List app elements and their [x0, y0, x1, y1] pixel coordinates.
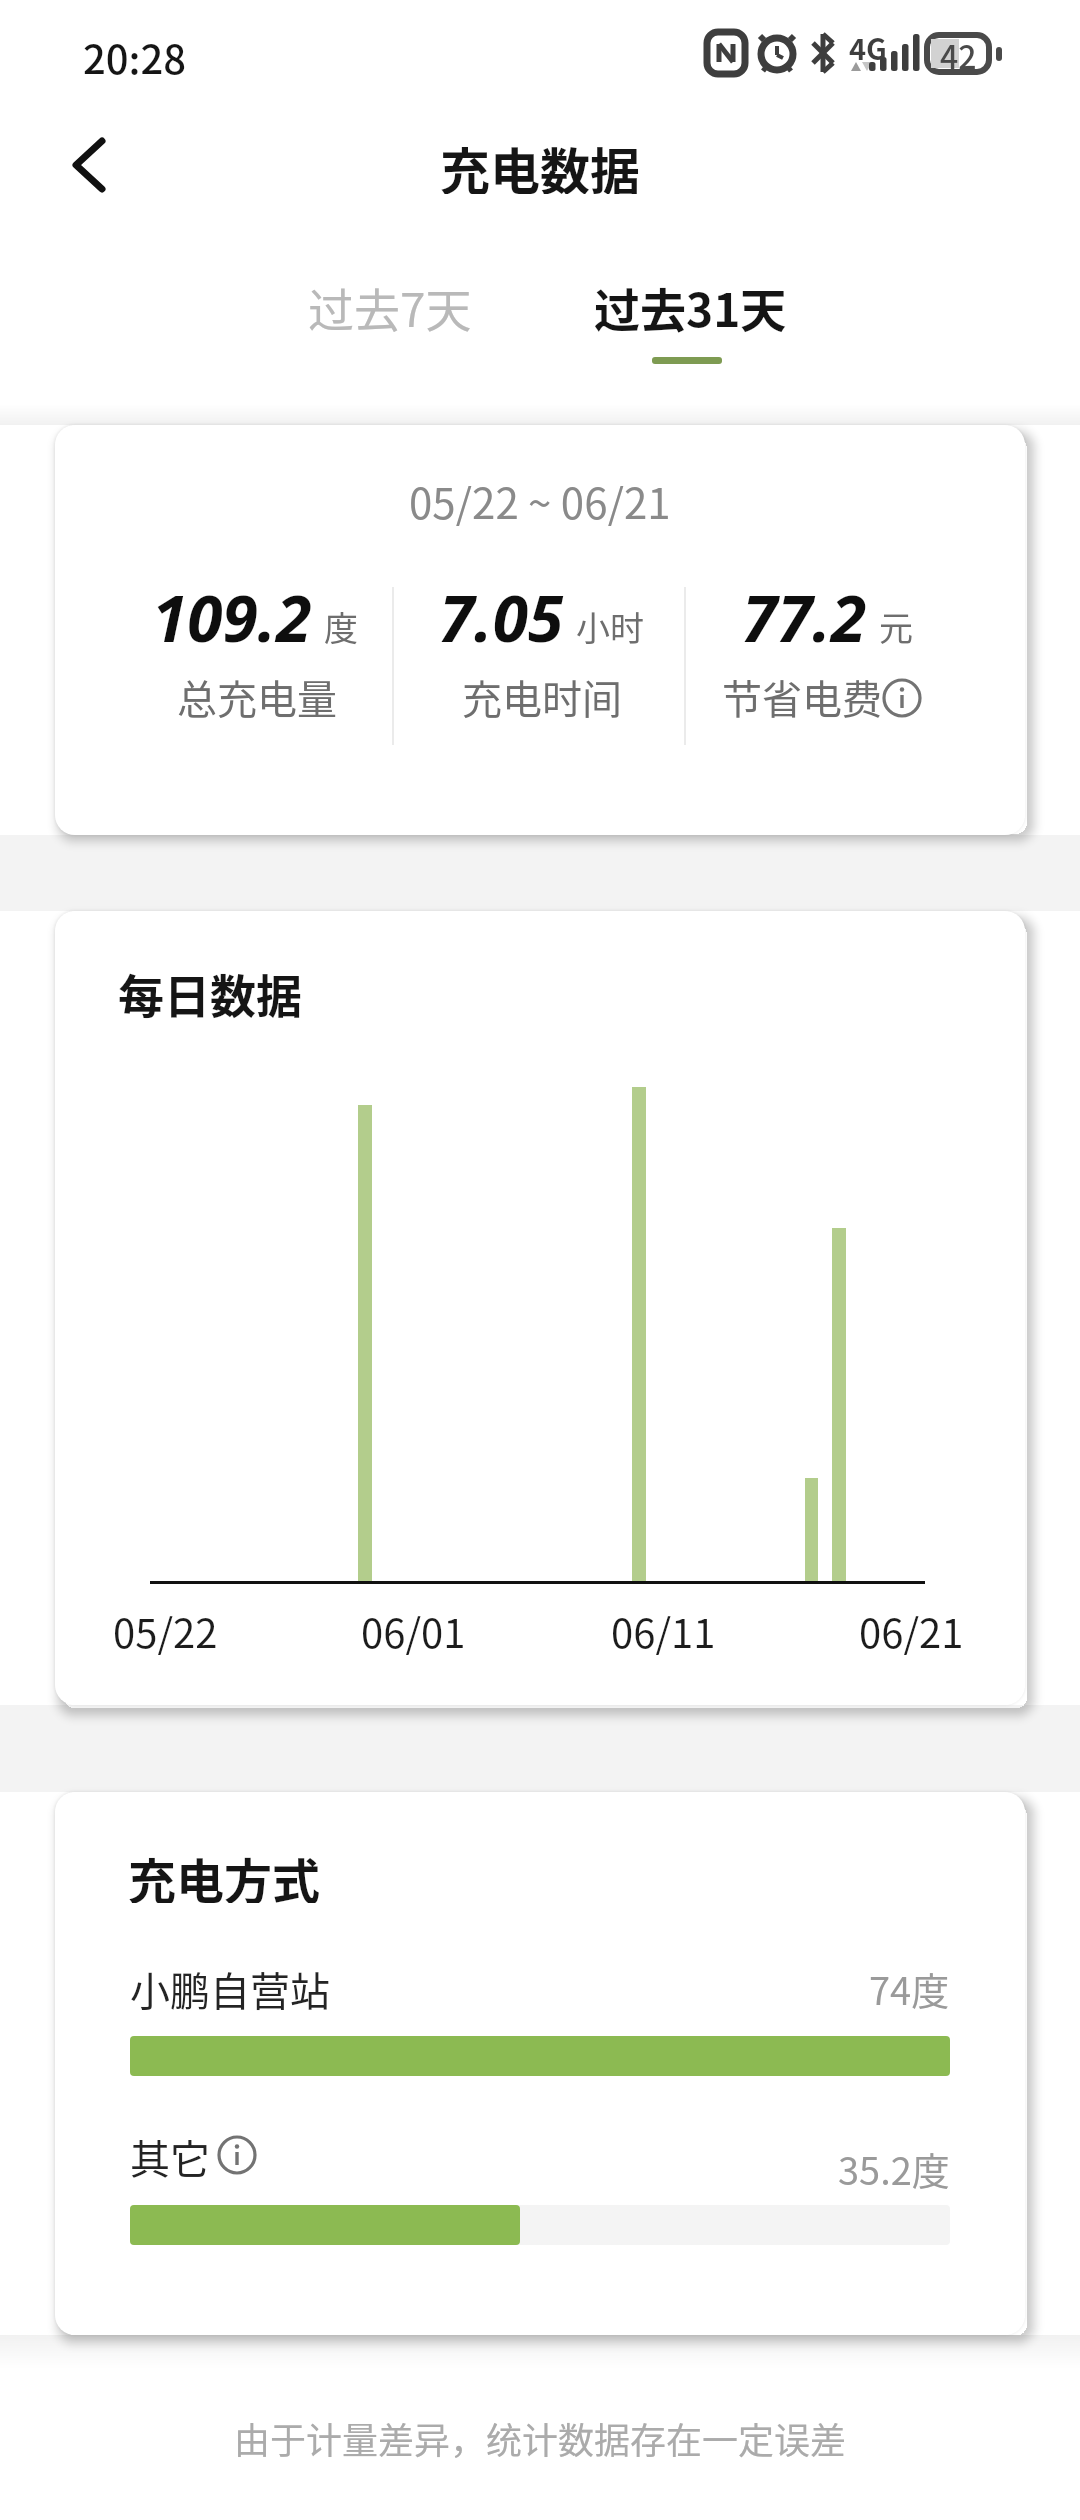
button[interactable]: 过去31天: [580, 265, 800, 350]
staticText: 过去31天: [594, 274, 787, 341]
staticText: 充电数据: [440, 132, 640, 194]
staticText: 06/21: [859, 1602, 964, 1656]
staticText: 35.2度: [838, 2141, 950, 2196]
staticText: 05/22: [113, 1602, 218, 1656]
staticText: 7.05: [439, 574, 564, 661]
staticText: 小鹏自营站: [130, 1960, 330, 2016]
staticText: 06/01: [361, 1602, 466, 1656]
staticText: 77.2: [742, 574, 867, 661]
button[interactable]: [50, 125, 130, 205]
staticText: 总充电量: [177, 668, 337, 724]
staticText: 过去7天: [308, 274, 472, 341]
staticText: 4G: [849, 26, 887, 60]
staticText: 06/11: [611, 1602, 716, 1656]
staticText: 充电时间: [462, 668, 622, 724]
staticText: 由于计量差异，统计数据存在一定误差: [234, 2412, 847, 2464]
staticText: 小时: [576, 602, 644, 651]
staticText: 109.2: [152, 574, 312, 661]
staticText: 充电方式: [128, 1843, 321, 1903]
staticText: 42: [940, 32, 977, 72]
staticText: 其它: [130, 2128, 210, 2184]
staticText: 元: [879, 602, 913, 651]
staticText: 05/22 ~ 06/21: [409, 470, 671, 526]
staticText: 度: [324, 602, 358, 651]
staticText: 每日数据: [118, 960, 302, 1020]
staticText: 74度: [869, 1961, 950, 2016]
staticText: 20:28: [83, 28, 187, 76]
staticText: 节省电费: [722, 668, 882, 724]
button[interactable]: 过去7天: [280, 265, 500, 350]
